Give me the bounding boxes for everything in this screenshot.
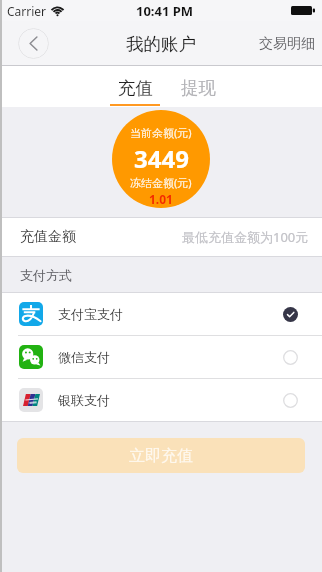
staticText: 充值 bbox=[118, 77, 153, 99]
staticText: 支付方式 bbox=[20, 267, 72, 283]
staticText: 当前余额(元) bbox=[130, 125, 192, 140]
button[interactable]: 银联支付 bbox=[0, 379, 322, 421]
staticText: 冻结金额(元) bbox=[130, 175, 192, 190]
staticText: 最低充值金额为100元 bbox=[182, 228, 309, 246]
staticText: 微信支付 bbox=[58, 349, 110, 365]
button[interactable]: 充值 bbox=[110, 66, 160, 107]
staticText: 立即充值 bbox=[129, 446, 193, 466]
staticText: Carrier bbox=[7, 3, 47, 19]
staticText: 交易明细 bbox=[259, 35, 315, 53]
button[interactable]: 支付宝支付 bbox=[0, 293, 322, 335]
staticText: 提现 bbox=[181, 77, 216, 99]
staticText: 充值金额 bbox=[20, 228, 76, 246]
button[interactable]: 交易明细 bbox=[247, 27, 322, 61]
button[interactable]: 提现 bbox=[173, 66, 223, 107]
staticText: 支付宝支付 bbox=[58, 306, 123, 322]
button[interactable]: 立即充值 bbox=[17, 438, 305, 473]
staticText: 1.01 bbox=[149, 191, 173, 207]
button[interactable]: Back bbox=[18, 28, 49, 59]
staticText: 3449 bbox=[134, 142, 189, 175]
staticText: 我的账户 bbox=[126, 33, 196, 55]
staticText: 银联支付 bbox=[58, 392, 110, 408]
staticText: 10:41 PM bbox=[136, 2, 194, 20]
button[interactable]: 微信支付 bbox=[0, 336, 322, 378]
button[interactable]: 充值金额 bbox=[0, 218, 322, 256]
